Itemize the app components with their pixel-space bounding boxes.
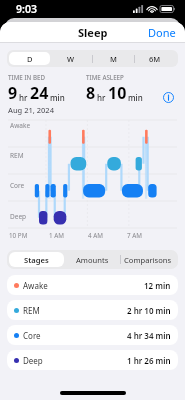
staticText: Core	[23, 330, 41, 341]
staticText: Awake	[23, 280, 48, 291]
staticText: min	[128, 92, 143, 103]
button[interactable]: REM	[7, 300, 178, 320]
staticText: TIME ASLEEP	[86, 73, 124, 81]
staticText: hr	[19, 92, 28, 103]
staticText: 10	[108, 82, 127, 104]
staticText: Deep	[10, 212, 27, 221]
button[interactable]: W	[50, 52, 92, 65]
staticText: 7 AM	[127, 231, 142, 240]
staticText: 8	[86, 82, 96, 104]
button[interactable]: Information	[160, 89, 177, 106]
button[interactable]: Done	[139, 22, 185, 42]
staticText: Core	[10, 181, 25, 190]
staticText: Sleep	[78, 25, 108, 40]
button[interactable]: Awake	[7, 275, 178, 295]
staticText: REM	[10, 151, 24, 160]
button[interactable]: 6M	[134, 52, 176, 65]
staticText: Amounts	[76, 255, 109, 265]
staticText: 10 PM	[9, 231, 28, 240]
staticText: REM	[23, 305, 40, 316]
staticText: D	[27, 54, 33, 64]
staticText: M	[110, 54, 117, 64]
staticText: Done	[148, 25, 176, 39]
staticText: Stages	[24, 255, 49, 265]
staticText: 9:03	[16, 2, 37, 16]
staticText: W	[67, 54, 75, 64]
staticText: 9	[8, 82, 18, 104]
button[interactable]: Stages	[9, 252, 64, 267]
staticText: 1 hr 26 min	[127, 355, 171, 366]
staticText: TIME IN BED	[8, 73, 46, 81]
staticText: 24	[30, 82, 49, 104]
staticText: Deep	[23, 355, 43, 366]
staticText: 2 hr 10 min	[127, 305, 171, 316]
staticText: Aug 21, 2024	[8, 105, 54, 115]
button[interactable]: Comparisons	[120, 252, 176, 267]
button[interactable]: Deep	[7, 350, 178, 370]
staticText: Comparisons	[124, 255, 172, 265]
staticText: Awake	[10, 121, 31, 130]
staticText: 12 min	[144, 280, 171, 291]
staticText: 1 AM	[49, 231, 64, 240]
button[interactable]: M	[92, 52, 134, 65]
button[interactable]: D	[9, 52, 50, 65]
staticText: min	[50, 92, 65, 103]
staticText: 4 hr 34 min	[127, 330, 171, 341]
button[interactable]: Core	[7, 325, 178, 345]
staticText: 6M	[149, 54, 161, 64]
staticText: 4 AM	[88, 231, 103, 240]
button[interactable]: Amounts	[64, 252, 120, 267]
staticText: hr	[97, 92, 106, 103]
